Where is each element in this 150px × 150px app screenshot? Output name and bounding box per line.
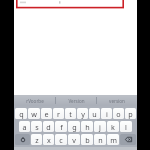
button[interactable]: Shift bbox=[15, 134, 30, 145]
staticText: t bbox=[69, 109, 72, 119]
staticText: j bbox=[99, 122, 101, 132]
button[interactable]: i bbox=[101, 108, 112, 119]
staticText: a bbox=[22, 122, 27, 132]
button[interactable]: version bbox=[97, 95, 137, 106]
button[interactable]: n bbox=[94, 134, 106, 145]
staticText: s bbox=[35, 122, 39, 132]
button[interactable]: w bbox=[28, 108, 40, 119]
staticText: z bbox=[35, 135, 39, 145]
button[interactable]: j bbox=[94, 121, 106, 132]
button[interactable]: c bbox=[55, 134, 67, 145]
staticText: d bbox=[46, 122, 51, 132]
button[interactable]: s bbox=[31, 121, 42, 132]
button[interactable]: l bbox=[120, 121, 132, 132]
staticText: e bbox=[44, 109, 49, 119]
button[interactable]: y bbox=[77, 108, 88, 119]
button[interactable]: t bbox=[65, 108, 76, 119]
button[interactable]: x bbox=[43, 134, 54, 145]
button[interactable]: f bbox=[55, 121, 67, 132]
button[interactable]: rVoorbe bbox=[14, 95, 55, 106]
button[interactable]: Delete bbox=[120, 134, 136, 145]
button[interactable]: g bbox=[68, 121, 80, 132]
staticText: i bbox=[106, 109, 108, 119]
button[interactable]: u bbox=[89, 108, 100, 119]
button[interactable]: o bbox=[113, 108, 124, 119]
button[interactable]: v bbox=[68, 134, 80, 145]
staticText: g bbox=[72, 122, 77, 132]
button[interactable]: m bbox=[107, 134, 119, 145]
staticText: h bbox=[85, 122, 90, 132]
staticText: u bbox=[92, 109, 97, 119]
button[interactable]: z bbox=[31, 134, 42, 145]
staticText: b bbox=[85, 135, 90, 145]
button[interactable]: a bbox=[19, 121, 30, 132]
button[interactable]: Version bbox=[56, 95, 96, 106]
staticText: l bbox=[125, 122, 127, 132]
button[interactable]: b bbox=[81, 134, 93, 145]
staticText: version bbox=[109, 98, 125, 104]
button[interactable] bbox=[14, 0, 137, 8]
staticText: f bbox=[60, 122, 63, 132]
staticText: n bbox=[98, 135, 103, 145]
staticText: rVoorbe bbox=[26, 98, 44, 104]
staticText: m bbox=[110, 135, 117, 145]
button[interactable]: k bbox=[107, 121, 119, 132]
staticText: r bbox=[57, 109, 60, 119]
staticText: y bbox=[81, 109, 85, 119]
staticText: w bbox=[31, 109, 37, 119]
staticText: q bbox=[19, 109, 24, 119]
button[interactable]: q bbox=[15, 108, 27, 119]
staticText: o bbox=[116, 109, 121, 119]
button[interactable]: p bbox=[125, 108, 136, 119]
staticText: p bbox=[128, 109, 133, 119]
button[interactable]: h bbox=[81, 121, 93, 132]
button[interactable]: e bbox=[41, 108, 52, 119]
button[interactable]: d bbox=[43, 121, 54, 132]
staticText: x bbox=[47, 135, 51, 145]
staticText: v bbox=[72, 135, 76, 145]
staticText: Version bbox=[68, 98, 85, 104]
staticText: k bbox=[111, 122, 115, 132]
button[interactable]: r bbox=[53, 108, 64, 119]
staticText: c bbox=[59, 135, 63, 145]
